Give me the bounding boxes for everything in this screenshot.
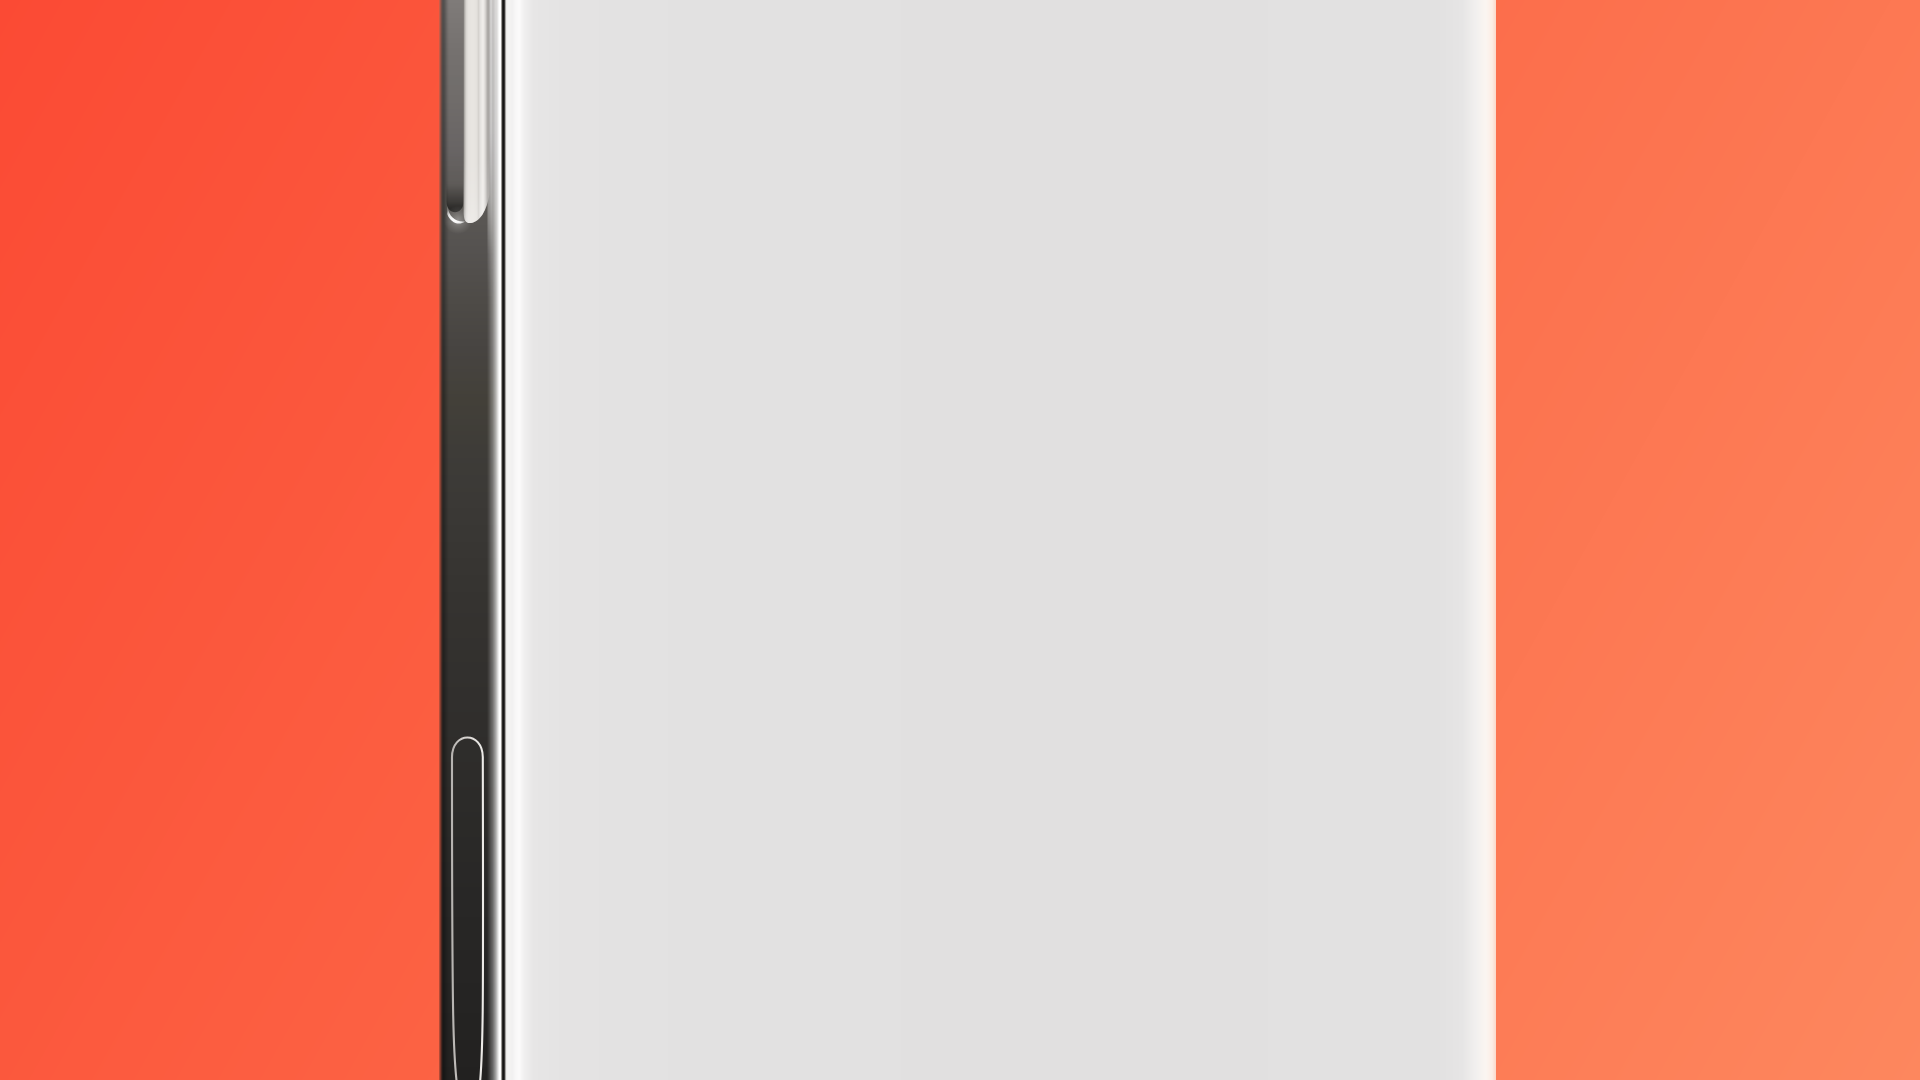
button[interactable]: Volume button bbox=[450, 731, 486, 1080]
button[interactable]: Power button bbox=[446, 0, 501, 228]
button[interactable]: Phone display bbox=[504, 0, 1496, 1080]
